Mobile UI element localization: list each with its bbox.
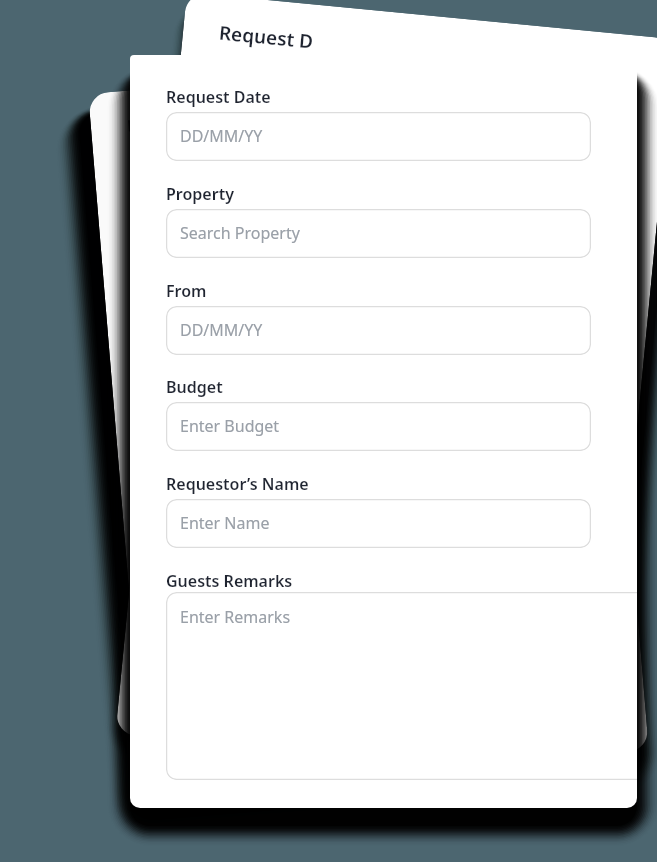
- staticText: Request Date: [166, 86, 271, 108]
- staticText: Enter Remarks: [180, 606, 291, 628]
- staticText: Guests Remarks: [166, 570, 293, 592]
- staticText: From: [142, 309, 185, 334]
- staticText: Property: [205, 160, 274, 188]
- staticText: Budget: [150, 406, 209, 433]
- button[interactable]: DD/MM/YY: [166, 306, 591, 355]
- button[interactable]: DD/MM/YY: [209, 89, 630, 178]
- button[interactable]: Enter Name: [166, 499, 591, 548]
- button[interactable]: Enter Remarks: [166, 592, 637, 780]
- button[interactable]: Enter Name: [171, 483, 592, 572]
- button[interactable]: DD/MM/YY: [144, 305, 580, 389]
- button[interactable]: Enter Budget: [153, 403, 588, 488]
- button[interactable]: DD/MM/YY: [128, 107, 564, 192]
- button[interactable]: Enter Remarks: [151, 582, 582, 777]
- staticText: Guests Remarks: [167, 598, 295, 630]
- staticText: DD/MM/YY: [180, 125, 263, 147]
- staticText: Requestor’s Name: [176, 456, 321, 491]
- button[interactable]: Search Property: [199, 188, 620, 277]
- staticText: Property: [166, 183, 234, 205]
- staticText: Requestor’s Name: [166, 473, 309, 495]
- staticText: Enter Name: [176, 542, 267, 571]
- button[interactable]: DD/MM/YY: [190, 286, 611, 375]
- button[interactable]: Enter Budget: [166, 402, 591, 451]
- button[interactable]: Enter Name: [161, 502, 596, 586]
- staticText: DD/MM/YY: [143, 148, 228, 176]
- staticText: Request Date: [126, 106, 232, 137]
- staticText: Requestor’s Name: [158, 498, 303, 531]
- button[interactable]: Search Property: [166, 209, 591, 258]
- staticText: DD/MM/YY: [224, 103, 309, 133]
- staticText: DD/MM/YY: [160, 345, 244, 374]
- staticText: DD/MM/YY: [205, 301, 290, 330]
- staticText: Enter Budget: [180, 415, 280, 437]
- staticText: Enter Name: [186, 498, 278, 528]
- staticText: Budget: [186, 357, 245, 384]
- staticText: Request D: [218, 20, 315, 55]
- button[interactable]: Enter Budget: [180, 385, 601, 474]
- staticText: Request Date: [214, 61, 321, 93]
- button[interactable]: DD/MM/YY: [166, 112, 591, 161]
- staticText: Enter Budget: [168, 442, 269, 472]
- staticText: Guests Remarks: [167, 554, 295, 588]
- staticText: Search Property: [180, 222, 300, 244]
- staticText: Search Property: [151, 243, 273, 275]
- button[interactable]: Search Property: [136, 206, 572, 290]
- staticText: Budget: [166, 376, 223, 398]
- staticText: Search Property: [215, 202, 336, 235]
- staticText: Enter Budget: [196, 399, 297, 431]
- staticText: Enter Remarks: [177, 597, 289, 630]
- staticText: DD/MM/YY: [180, 319, 263, 341]
- staticText: Enter Name: [180, 512, 270, 534]
- button[interactable]: Enter Remarks: [169, 601, 613, 789]
- staticText: From: [166, 280, 207, 302]
- staticText: Property: [134, 208, 204, 235]
